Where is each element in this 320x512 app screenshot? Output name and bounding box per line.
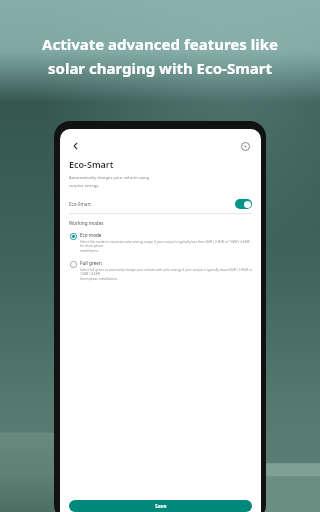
button[interactable]: Eco-Smart: [69, 196, 252, 211]
staticText: Activate advanced features like: [42, 34, 278, 54]
staticText: Eco-Smart: [69, 158, 114, 170]
staticText: installations.: [80, 249, 99, 253]
staticText: Working modes: [69, 220, 104, 226]
staticText: Eco-Smart: [69, 201, 91, 207]
button[interactable]: Help: [238, 139, 252, 153]
button[interactable]: Back: [69, 139, 83, 153]
button[interactable]: Save: [69, 500, 252, 512]
button[interactable]: Eco mode: [69, 232, 252, 253]
staticText: Select full green to exclusively charge …: [80, 268, 252, 276]
staticText: Eco mode: [80, 232, 102, 238]
button[interactable]: Full green: [69, 260, 252, 281]
staticText: Save: [155, 503, 167, 510]
staticText: Select this mode to maximise solar energ…: [80, 240, 252, 248]
staticText: Automatically charges your vehicle using: [69, 175, 150, 181]
staticText: surplus energy: [69, 183, 99, 189]
staticText: solar charging with Eco-Smart: [48, 58, 272, 78]
staticText: three-phase installations.: [80, 277, 118, 281]
staticText: Full green: [80, 260, 102, 266]
